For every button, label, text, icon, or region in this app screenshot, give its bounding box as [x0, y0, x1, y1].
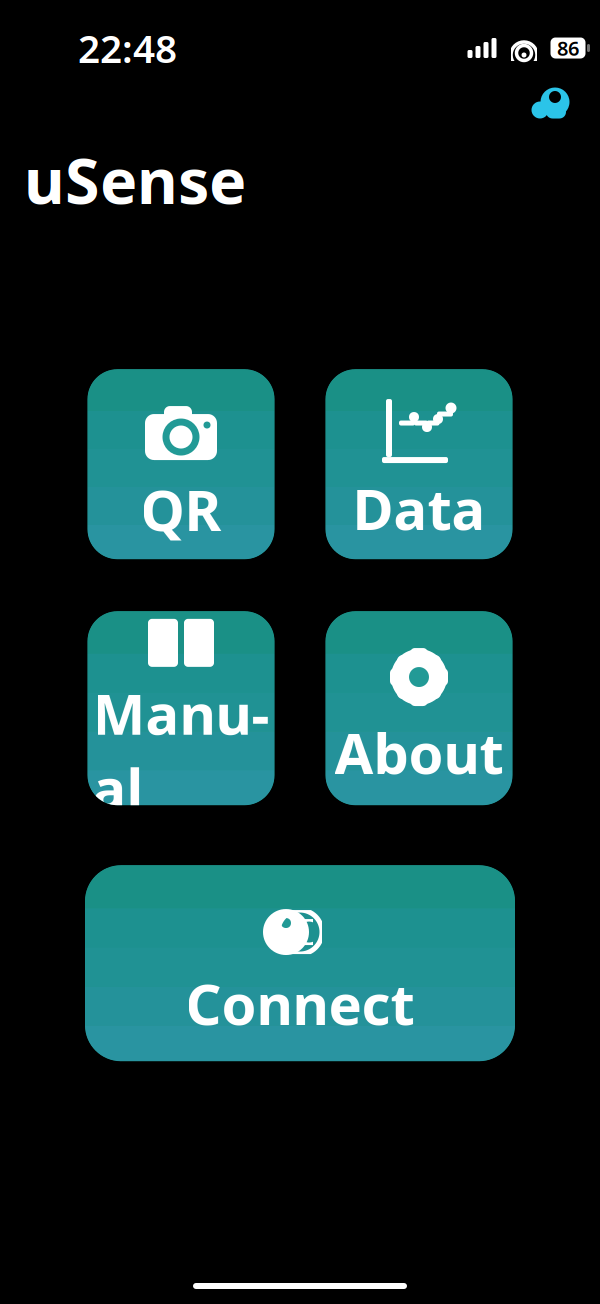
button[interactable]: Data — [325, 369, 512, 559]
staticText: uSense — [24, 138, 246, 221]
button[interactable]: Connect — [85, 865, 515, 1061]
staticText: Data — [352, 471, 485, 545]
staticText: Connect — [185, 966, 414, 1040]
staticText: 22:48 — [78, 22, 177, 74]
staticText: Manual — [92, 676, 269, 825]
staticText: About — [334, 715, 503, 789]
button[interactable]: QR — [87, 369, 274, 559]
staticText: QR — [140, 472, 221, 546]
button[interactable]: Profile — [529, 82, 573, 126]
staticText: 86 — [557, 35, 579, 61]
button[interactable]: About — [325, 611, 512, 805]
button[interactable]: Manual — [87, 611, 274, 805]
